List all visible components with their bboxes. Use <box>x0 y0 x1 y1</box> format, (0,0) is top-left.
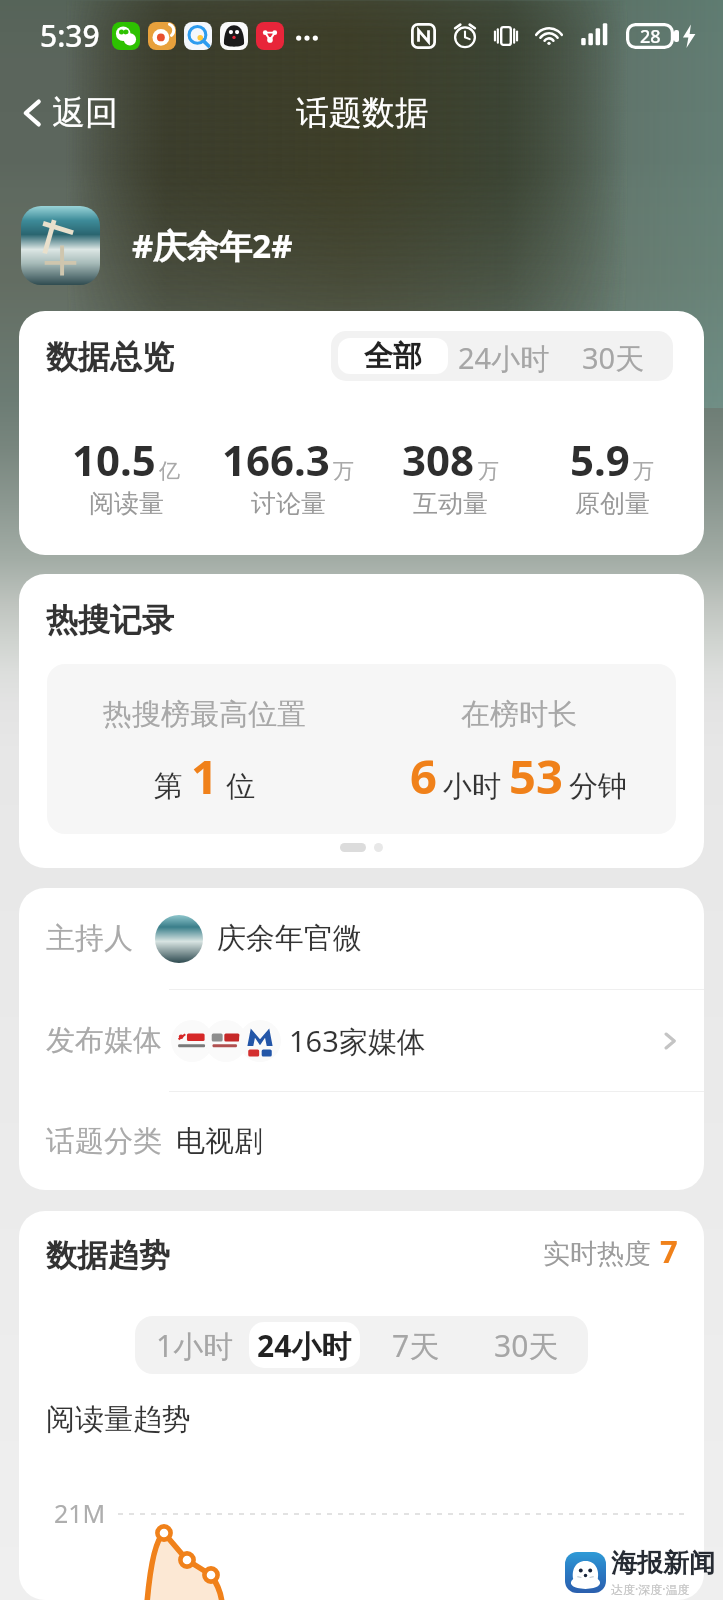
staticText: 5:39 <box>40 15 100 56</box>
staticText: 小时 <box>443 768 501 805</box>
staticText: 数据总览 <box>46 337 174 377</box>
button[interactable]: 返回 <box>0 82 134 144</box>
button[interactable]: 发布媒体 <box>19 990 704 1091</box>
staticText: 热搜榜最高位置 <box>103 696 306 733</box>
staticText: 308 <box>402 431 475 488</box>
staticText: 原创量 <box>575 488 650 519</box>
staticText: 30天 <box>494 1325 559 1366</box>
staticText: 发布媒体 <box>46 1022 162 1059</box>
button[interactable]: 30天 <box>560 338 666 374</box>
staticText: 21M <box>54 1496 106 1530</box>
button[interactable]: 1小时 <box>141 1322 249 1368</box>
staticText: 10.5 <box>72 431 156 488</box>
staticText: 万 <box>633 458 654 484</box>
staticText: 24小时 <box>257 1325 352 1366</box>
staticText: 数据趋势 <box>46 1236 170 1275</box>
staticText: 163家媒体 <box>289 1021 426 1061</box>
button[interactable]: 24小时 <box>448 338 560 374</box>
staticText: 实时热度 <box>543 1237 651 1271</box>
staticText: 万 <box>478 458 499 484</box>
staticText: 互动量 <box>413 488 488 519</box>
staticText: 返回 <box>52 92 118 134</box>
staticText: 第 <box>154 768 183 805</box>
staticText: 30天 <box>582 338 645 374</box>
staticText: 达度·深度·温度 <box>611 1581 690 1597</box>
button[interactable]: 24小时 <box>249 1322 360 1368</box>
staticText: 电视剧 <box>176 1123 263 1160</box>
staticText: 主持人 <box>46 920 133 957</box>
staticText: 5.9 <box>570 431 630 488</box>
staticText: 6 <box>410 744 437 808</box>
button[interactable]: 30天 <box>471 1322 582 1368</box>
other: 查看发布媒体 <box>661 1026 679 1056</box>
staticText: 1 <box>191 744 218 808</box>
staticText: 1小时 <box>156 1325 234 1366</box>
staticText: 热搜记录 <box>46 600 174 640</box>
staticText: 7 <box>660 1230 678 1272</box>
staticText: 166.3 <box>222 431 330 488</box>
staticText: 位 <box>226 768 255 805</box>
staticText: 24小时 <box>458 338 550 374</box>
staticText: 全部 <box>364 338 422 374</box>
staticText: 话题分类 <box>46 1123 162 1160</box>
staticText: 讨论量 <box>251 488 326 519</box>
staticText: 阅读量趋势 <box>46 1401 191 1438</box>
staticText: 亿 <box>159 458 180 484</box>
staticText: #庆余年2# <box>132 223 293 268</box>
staticText: 53 <box>509 744 563 808</box>
staticText: 7天 <box>392 1325 440 1366</box>
staticText: 话题数据 <box>296 92 428 134</box>
staticText: 庆余年官微 <box>217 920 362 957</box>
button[interactable]: 7天 <box>360 1322 471 1368</box>
staticText: 海报新闻 <box>611 1547 715 1580</box>
button[interactable]: 全部 <box>338 338 448 374</box>
staticText: 阅读量 <box>89 488 164 519</box>
staticText: 28 <box>640 24 661 49</box>
staticText: 在榜时长 <box>461 696 577 733</box>
staticText: 万 <box>333 458 354 484</box>
staticText: 分钟 <box>569 768 627 805</box>
